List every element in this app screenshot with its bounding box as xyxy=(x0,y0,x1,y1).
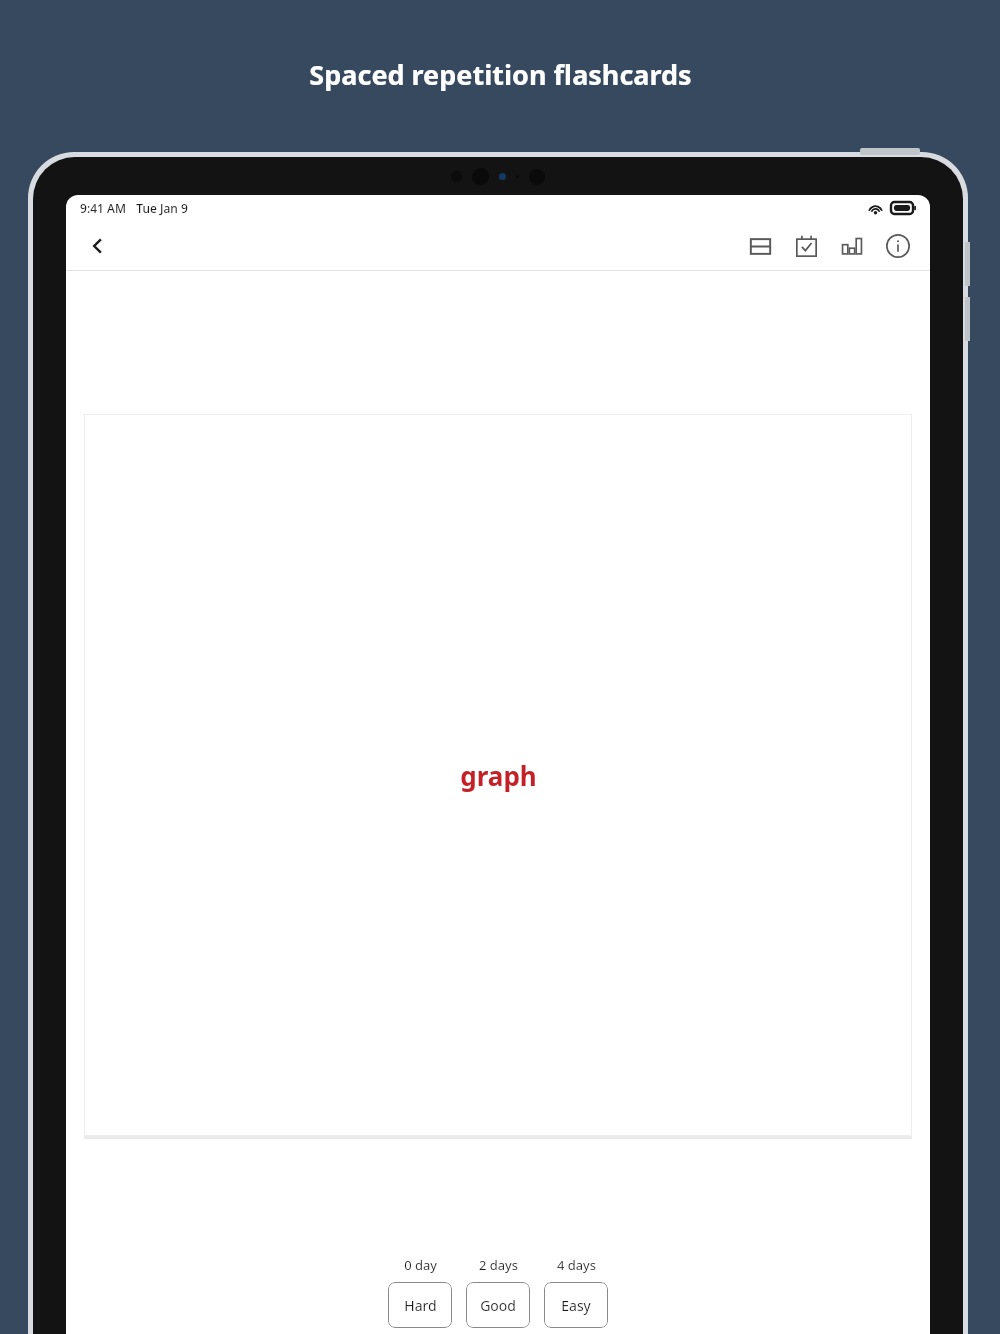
staticText: graph xyxy=(460,758,537,793)
button[interactable]: Schedule xyxy=(786,226,826,266)
staticText: Hard xyxy=(404,1296,437,1315)
staticText: Tue Jan 9 xyxy=(136,200,188,216)
button[interactable]: Easy xyxy=(544,1282,608,1328)
staticText: 2 days xyxy=(479,1256,518,1274)
staticText: Spaced repetition flashcards xyxy=(309,56,692,93)
staticText: 4 days xyxy=(557,1256,596,1274)
staticText: 0 day xyxy=(404,1256,437,1274)
button[interactable]: Statistics xyxy=(832,226,872,266)
button[interactable]: Hard xyxy=(388,1282,452,1328)
button[interactable]: Info xyxy=(878,226,918,266)
button[interactable]: graph xyxy=(84,414,912,1136)
staticText: Easy xyxy=(561,1296,591,1315)
staticText: Good xyxy=(480,1296,516,1315)
button[interactable]: Back xyxy=(78,226,118,266)
staticText: 9:41 AM xyxy=(80,200,126,216)
button[interactable]: Card layout xyxy=(740,226,780,266)
button[interactable]: Good xyxy=(466,1282,530,1328)
